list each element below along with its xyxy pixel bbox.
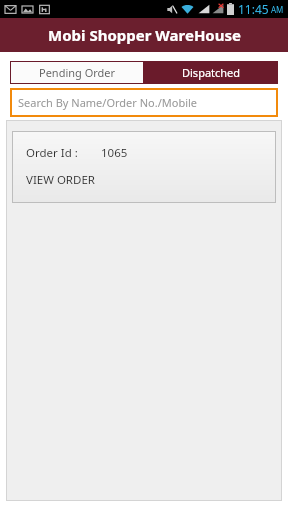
button[interactable]: Search By Name/Order No./Mobile (10, 88, 278, 117)
button[interactable]: Pending Order (10, 61, 144, 84)
staticText: AM (271, 4, 284, 15)
staticText: Mobi Shopper WareHouse (48, 25, 241, 45)
staticText: Pending Order (39, 65, 116, 80)
staticText: Order Id : (26, 145, 78, 161)
staticText: 1065 (101, 145, 128, 161)
button[interactable]: VIEW ORDER (26, 172, 95, 188)
button[interactable]: Order Id : (12, 131, 276, 203)
staticText: 11:45 (238, 1, 269, 17)
staticText: Search By Name/Order No./Mobile (18, 95, 198, 110)
staticText: VIEW ORDER (26, 172, 95, 188)
staticText: Dispatched (182, 65, 241, 80)
button[interactable]: Dispatched (144, 61, 278, 84)
